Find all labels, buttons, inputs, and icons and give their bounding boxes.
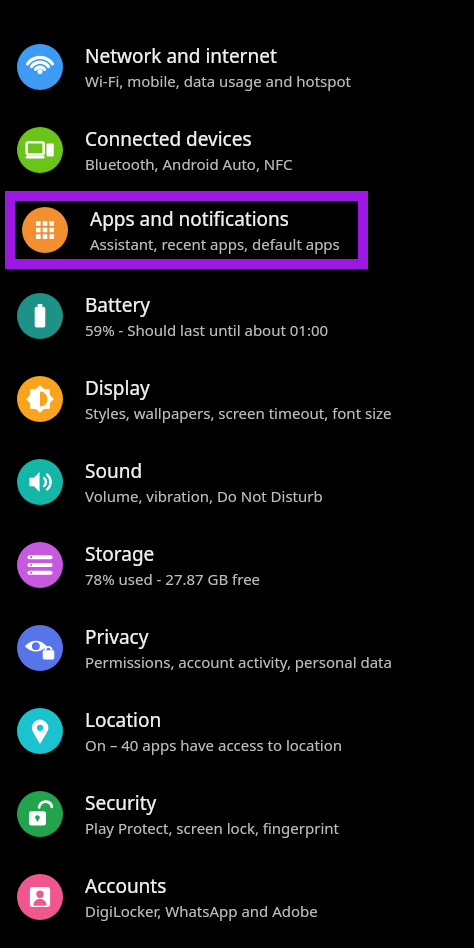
staticText: 59% - Should last until about 01:00 — [85, 320, 329, 340]
staticText: Volume, vibration, Do Not Disturb — [85, 486, 323, 506]
button[interactable]: Accounts — [0, 855, 474, 938]
staticText: On – 40 apps have access to location — [85, 735, 343, 755]
staticText: Security — [85, 790, 157, 816]
button[interactable]: Connected devices — [0, 108, 474, 191]
other: Accounts — [17, 874, 63, 920]
other: Connected devices — [17, 127, 63, 173]
other: Apps and notifications — [22, 207, 68, 253]
staticText: Connected devices — [85, 126, 252, 152]
staticText: Sound — [85, 458, 143, 484]
button[interactable]: Apps and notifications — [15, 201, 358, 259]
other: Privacy — [17, 625, 63, 671]
staticText: 78% used - 27.87 GB free — [85, 569, 261, 589]
staticText: Bluetooth, Android Auto, NFC — [85, 154, 293, 174]
staticText: DigiLocker, WhatsApp and Adobe — [85, 901, 318, 921]
staticText: Battery — [85, 292, 150, 318]
button[interactable]: Battery — [0, 274, 474, 357]
other: Display — [17, 376, 63, 422]
button[interactable]: Location — [0, 689, 474, 772]
staticText: Wi-Fi, mobile, data usage and hotspot — [85, 71, 351, 91]
staticText: Storage — [85, 541, 155, 567]
other: Battery — [17, 293, 63, 339]
button[interactable]: Privacy — [0, 606, 474, 689]
button[interactable]: Sound — [0, 440, 474, 523]
other: Storage — [17, 542, 63, 588]
staticText: Styles, wallpapers, screen timeout, font… — [85, 403, 392, 423]
staticText: Accounts — [85, 873, 167, 899]
staticText: Network and internet — [85, 43, 277, 69]
button[interactable]: Display — [0, 357, 474, 440]
other: Network and internet — [17, 44, 63, 90]
staticText: Play Protect, screen lock, fingerprint — [85, 818, 339, 838]
other: Location — [17, 708, 63, 754]
staticText: Permissions, account activity, personal … — [85, 652, 392, 672]
other: Security — [17, 791, 63, 837]
staticText: Assistant, recent apps, default apps — [90, 234, 340, 254]
other: Sound — [17, 459, 63, 505]
staticText: Privacy — [85, 624, 149, 650]
staticText: Location — [85, 707, 162, 733]
staticText: Apps and notifications — [90, 206, 289, 232]
button[interactable]: Network and internet — [0, 25, 474, 108]
staticText: Display — [85, 375, 150, 401]
button[interactable]: Security — [0, 772, 474, 855]
button[interactable]: Storage — [0, 523, 474, 606]
